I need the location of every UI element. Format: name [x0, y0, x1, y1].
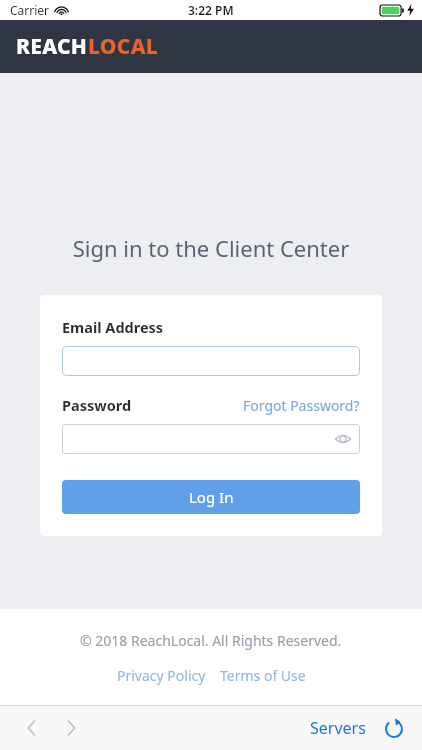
- button[interactable]: Show password: [62, 424, 360, 454]
- button[interactable]: REACH: [16, 32, 159, 61]
- button[interactable]: Forward: [58, 715, 84, 741]
- staticText: Email Address: [62, 317, 164, 337]
- staticText: 3:22 PM: [188, 2, 234, 18]
- staticText: Privacy Policy: [117, 666, 206, 685]
- button[interactable]: Show password: [334, 430, 352, 448]
- button[interactable]: Privacy Policy: [117, 666, 206, 685]
- staticText: Servers: [310, 717, 366, 739]
- button[interactable]: Servers: [308, 717, 368, 739]
- button[interactable]: Back: [18, 715, 44, 741]
- staticText: Forgot Password?: [243, 396, 360, 415]
- button[interactable]: Forgot Password?: [243, 396, 360, 415]
- staticText: Password: [62, 395, 132, 415]
- staticText: © 2018 ReachLocal. All Rights Reserved.: [80, 631, 342, 650]
- button[interactable]: Log In: [62, 480, 360, 514]
- staticText: LOCAL: [88, 32, 159, 61]
- button[interactable]: [62, 346, 360, 376]
- button[interactable]: Refresh: [380, 714, 408, 742]
- staticText: Sign in to the Client Center: [0, 233, 422, 263]
- staticText: Terms of Use: [220, 666, 306, 685]
- button[interactable]: Terms of Use: [220, 666, 306, 685]
- staticText: REACH: [16, 32, 88, 61]
- staticText: Log In: [189, 487, 234, 507]
- staticText: Carrier: [10, 2, 50, 18]
